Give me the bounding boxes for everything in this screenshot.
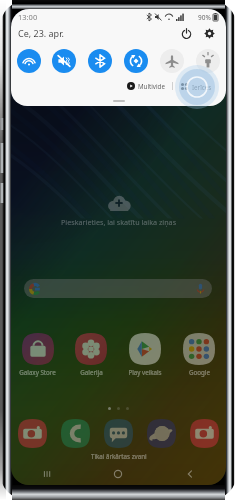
button[interactable]: Bluetooth: [82, 47, 118, 75]
button[interactable]: Recents: [11, 463, 82, 485]
staticText: 90%: [198, 13, 211, 22]
button[interactable]: Back: [154, 463, 226, 485]
staticText: Galerija: [80, 368, 103, 376]
button[interactable]: Camera: [183, 419, 226, 448]
button[interactable]: Home: [82, 463, 154, 485]
staticText: Ce, 23. apr.: [18, 27, 64, 39]
button[interactable]: Play veikals: [118, 333, 172, 376]
staticText: Multivide: [138, 82, 165, 90]
staticText: Play veikals: [128, 368, 162, 376]
staticText: Ierīces: [192, 83, 212, 91]
button[interactable]: Auto rotate: [118, 47, 154, 75]
button[interactable]: Internet: [140, 419, 183, 448]
button[interactable]: Galerija: [64, 333, 118, 376]
button[interactable]: Multivide: [127, 82, 165, 90]
button[interactable]: Flashlight: [190, 47, 226, 75]
staticText: Pieskarieties, lai skatītu laika ziņas: [61, 217, 177, 227]
button[interactable]: Galaxy Store: [11, 333, 64, 376]
button[interactable]: Messages: [97, 419, 140, 448]
button[interactable]: Mute: [46, 47, 82, 75]
button[interactable]: Google: [172, 333, 226, 376]
button[interactable]: Airplane mode: [154, 47, 190, 75]
staticText: Tikai ārkārtas zvani: [91, 452, 147, 460]
button[interactable]: Phone: [54, 419, 97, 448]
button[interactable]: [24, 279, 212, 298]
button[interactable]: Pieskarieties, lai skatītu laika ziņas: [11, 195, 226, 227]
button[interactable]: Ierīces: [180, 82, 212, 91]
button[interactable]: Camera: [11, 419, 54, 448]
staticText: Galaxy Store: [19, 368, 56, 376]
button[interactable]: Wi-Fi: [11, 47, 46, 75]
button[interactable]: Power off: [178, 25, 194, 41]
staticText: 13:00: [18, 12, 38, 22]
staticText: Google: [189, 368, 210, 376]
button[interactable]: Settings: [201, 25, 217, 41]
